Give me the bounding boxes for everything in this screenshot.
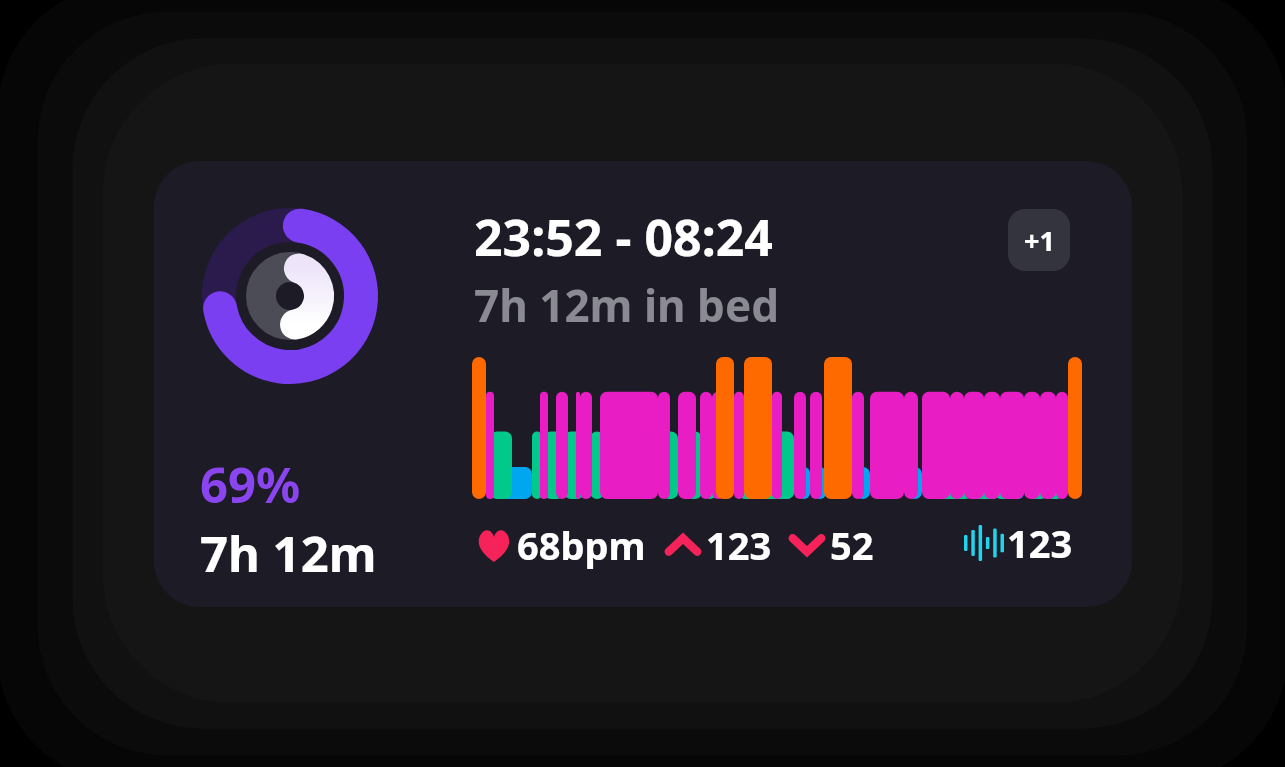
staticText: 23:52 - 08:24 xyxy=(474,203,773,271)
staticText: 7h 12m in bed xyxy=(474,275,779,335)
button[interactable]: Sleep stages chart xyxy=(472,357,1082,499)
button[interactable]: +1 xyxy=(1008,209,1070,271)
staticText: 123 xyxy=(1007,517,1073,569)
staticText: 123 xyxy=(706,519,772,571)
staticText: 68bpm xyxy=(517,519,646,571)
button[interactable]: Sound events xyxy=(964,517,1073,569)
staticText: +1 xyxy=(1024,222,1055,259)
other: Sound events xyxy=(964,525,1004,561)
button[interactable]: 69% xyxy=(154,161,1132,607)
staticText: 69% xyxy=(200,451,301,518)
staticText: 7h 12m xyxy=(200,520,377,587)
staticText: 52 xyxy=(830,519,874,571)
